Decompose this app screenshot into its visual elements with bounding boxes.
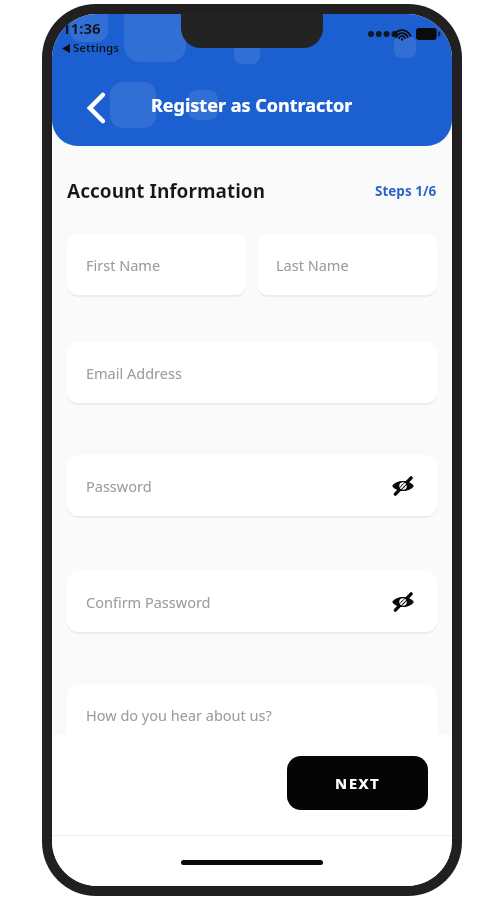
staticText: Password	[86, 476, 152, 496]
button[interactable]: Confirm Password	[67, 571, 437, 632]
staticText: First Name	[86, 255, 161, 275]
button[interactable]: First Name	[67, 234, 246, 295]
staticText: How do you hear about us?	[86, 705, 272, 725]
staticText: 11:36	[62, 18, 101, 38]
button[interactable]: NEXT	[287, 756, 428, 810]
button[interactable]: Back	[74, 86, 118, 130]
staticText: Account Information	[67, 178, 266, 204]
button[interactable]: How do you hear about us?	[67, 684, 437, 745]
staticText: Register as Contractor	[151, 93, 353, 118]
staticText: Settings	[73, 40, 119, 56]
button[interactable]: Steps 1/6	[375, 182, 437, 200]
staticText: Confirm Password	[86, 592, 211, 612]
button[interactable]: Toggle password visibility	[388, 471, 418, 501]
button[interactable]: Email Address	[67, 342, 437, 403]
button[interactable]: Toggle password visibility	[388, 587, 418, 617]
button[interactable]: Password	[67, 455, 437, 516]
staticText: Last Name	[276, 255, 349, 275]
button[interactable]: Last Name	[257, 234, 437, 295]
staticText: Email Address	[86, 363, 182, 383]
staticText: NEXT	[335, 773, 380, 793]
